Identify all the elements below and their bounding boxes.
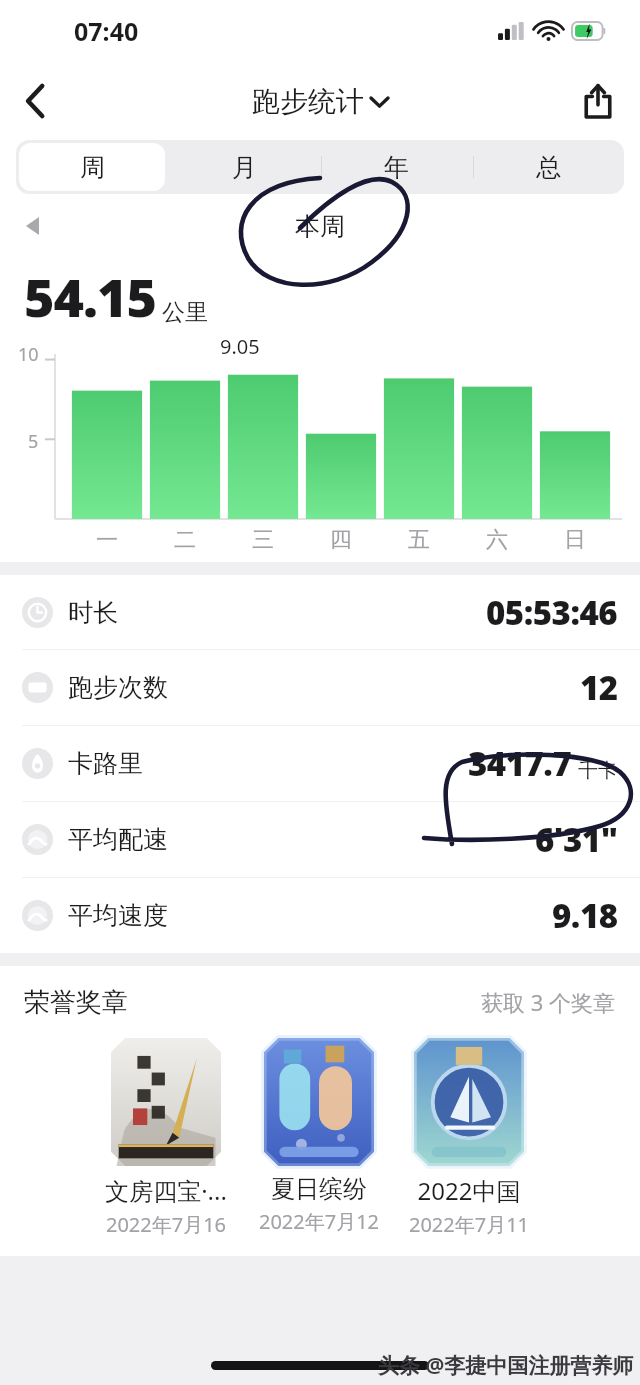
button[interactable]: 总	[475, 143, 621, 191]
staticText: 跑步统计	[252, 84, 364, 119]
staticText: 2022年7月16日	[102, 1211, 230, 1238]
staticText: 平均速度	[68, 900, 168, 931]
button[interactable]: 跑步统计	[252, 84, 388, 119]
staticText: 2022年7月12日	[255, 1208, 383, 1235]
staticText: 05:53:46	[486, 590, 618, 635]
staticText: 日	[564, 526, 586, 554]
button[interactable]: 跑步次数	[0, 650, 640, 725]
button[interactable]: Back	[8, 73, 64, 129]
staticText: 千卡	[578, 758, 618, 783]
staticText: 总	[536, 152, 561, 183]
staticText: 2022年7月11日	[405, 1211, 533, 1238]
button[interactable]: 时长	[0, 575, 640, 649]
staticText: 年	[384, 152, 409, 183]
staticText: 12	[580, 665, 618, 710]
button[interactable]: 月	[171, 143, 317, 191]
staticText: 五	[408, 526, 430, 554]
button[interactable]: 年	[323, 143, 469, 191]
staticText: 头条 @李捷中国注册营养师	[378, 1351, 634, 1380]
staticText: 本周	[295, 211, 345, 242]
staticText: 荣誉奖章	[24, 986, 128, 1019]
staticText: 周	[80, 152, 105, 183]
staticText: 文房四宝·...	[105, 1174, 227, 1207]
button[interactable]: Share	[570, 73, 626, 129]
staticText: 07:40	[74, 14, 139, 48]
staticText: 获取 3 个奖章	[481, 987, 616, 1017]
staticText: 10	[18, 342, 39, 367]
button[interactable]: Previous week	[10, 204, 54, 248]
button[interactable]: 卡路里	[0, 726, 640, 801]
staticText: 6'31"	[535, 817, 618, 862]
button[interactable]: 平均配速	[0, 802, 640, 877]
staticText: 9.18	[552, 893, 618, 938]
button[interactable]: 文房四宝·...	[102, 1038, 230, 1238]
staticText: 平均配速	[68, 824, 168, 855]
button[interactable]: 获取 3 个奖章	[481, 987, 616, 1017]
staticText: 3417.7	[468, 741, 572, 786]
staticText: 时长	[68, 597, 118, 628]
staticText: 六	[486, 526, 508, 554]
button[interactable]: 周	[19, 143, 165, 191]
staticText: 四	[330, 526, 352, 554]
staticText: 月	[232, 152, 257, 183]
staticText: 9.05	[220, 333, 260, 360]
staticText: 54.15	[24, 261, 156, 332]
button[interactable]: 夏日缤纷会...	[255, 1038, 383, 1235]
button[interactable]: 2022中国航...	[405, 1038, 533, 1238]
staticText: 夏日缤纷会...	[255, 1174, 383, 1204]
staticText: 2022中国航...	[405, 1174, 533, 1207]
button[interactable]: 平均速度	[0, 878, 640, 953]
staticText: 公里	[162, 298, 208, 327]
staticText: 一	[96, 526, 118, 554]
staticText: 跑步次数	[68, 672, 168, 703]
staticText: 二	[174, 526, 196, 554]
staticText: 5	[28, 429, 39, 454]
staticText: 卡路里	[68, 748, 143, 779]
staticText: 三	[252, 526, 274, 554]
